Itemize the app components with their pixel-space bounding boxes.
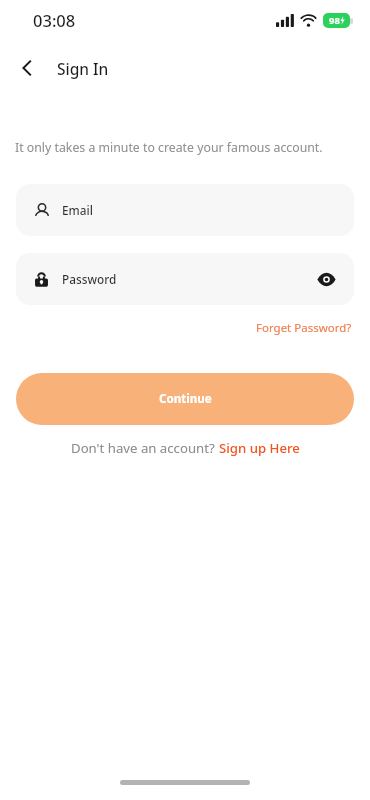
staticText: Password	[62, 271, 117, 287]
button[interactable]: Forget Password?	[254, 318, 354, 338]
staticText: 98	[329, 14, 340, 27]
button[interactable]: Continue	[16, 373, 354, 425]
button[interactable]: Sign up Here	[219, 439, 300, 457]
staticText: Sign up Here	[219, 439, 300, 457]
staticText: Don't have an account?	[71, 439, 219, 457]
button[interactable]: Back	[10, 51, 44, 85]
staticText: Continue	[159, 391, 212, 407]
button[interactable]: Email	[16, 184, 354, 236]
button[interactable]: Password	[16, 253, 354, 305]
staticText: Sign In	[57, 58, 109, 79]
staticText: Forget Password?	[256, 320, 352, 336]
staticText: Email	[62, 202, 93, 218]
button[interactable]: Show password	[314, 267, 338, 291]
staticText: It only takes a minute to create your fa…	[15, 139, 323, 156]
staticText: 03:08	[33, 9, 76, 31]
